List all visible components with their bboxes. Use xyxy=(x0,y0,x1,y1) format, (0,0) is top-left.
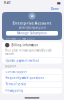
button[interactable]: Done xyxy=(50,6,60,12)
button[interactable]: Privacy policy xyxy=(2,88,62,94)
staticText: Privacy policy xyxy=(5,89,22,92)
staticText: Done xyxy=(51,7,59,11)
staticText: Your plan renews automatically each mont… xyxy=(5,49,52,56)
button[interactable]: Billing information xyxy=(2,42,62,49)
staticText: Frequently asked questions xyxy=(5,76,43,80)
staticText: Contact support xyxy=(5,70,27,73)
staticText: Enterprise Account xyxy=(12,20,51,26)
staticText: 9:41 xyxy=(4,1,11,5)
staticText: Renews 12 Mar 2025 xyxy=(6,37,35,40)
staticText: Update payment method xyxy=(5,59,39,62)
staticText: ▮▮▮ xyxy=(57,1,60,4)
button[interactable]: Update payment method xyxy=(2,58,62,64)
staticText: Manage Subscription xyxy=(17,31,47,35)
staticText: EA xyxy=(30,14,33,18)
button[interactable]: Frequently asked questions xyxy=(2,75,62,81)
staticText: Support xyxy=(5,64,16,68)
staticText: admin@company.com xyxy=(18,26,45,29)
button[interactable]: Manage Subscription xyxy=(6,31,58,36)
staticText: Terms of service xyxy=(5,83,26,86)
button[interactable]: Terms of service xyxy=(2,81,62,87)
button[interactable]: Contact support xyxy=(2,69,62,75)
staticText: Billing information xyxy=(11,43,38,47)
